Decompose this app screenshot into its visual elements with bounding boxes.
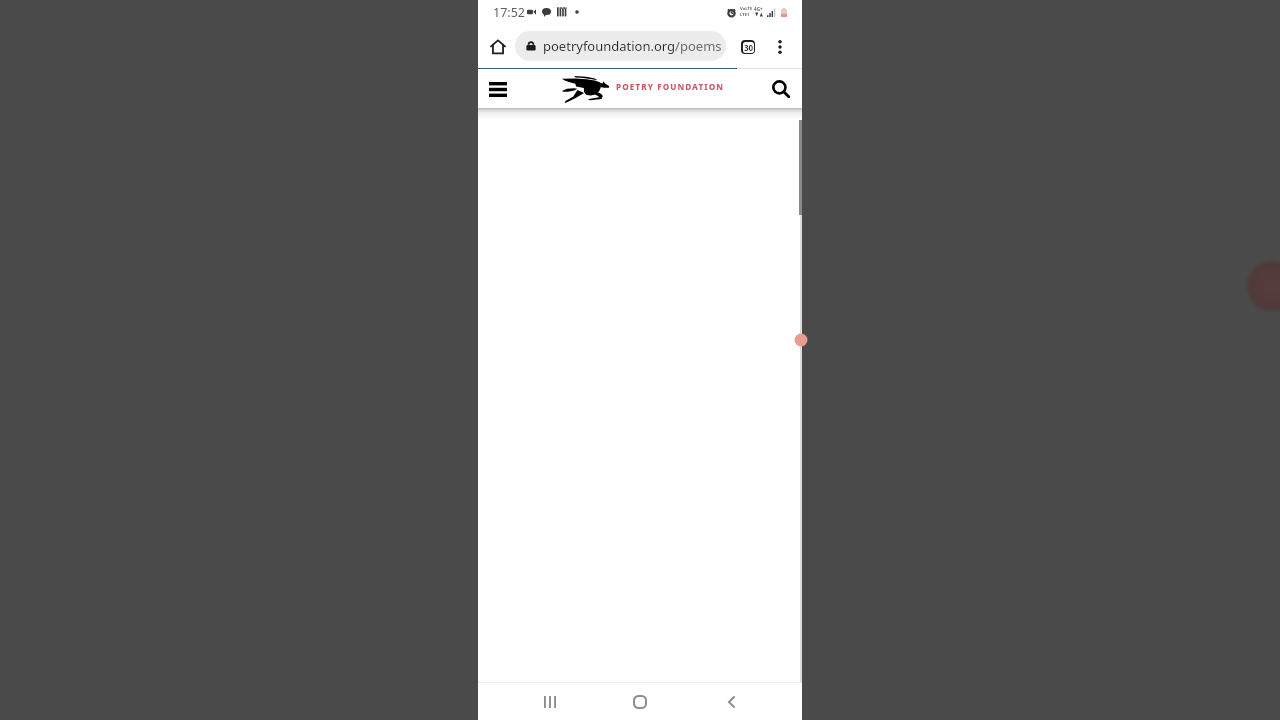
staticText: 17:52	[493, 4, 525, 21]
staticText: 4G+	[754, 6, 763, 12]
staticText: LTE1	[740, 12, 750, 18]
button[interactable]: Tabs	[737, 36, 759, 58]
button[interactable]: Search	[769, 77, 792, 100]
button[interactable]: Home	[623, 685, 657, 719]
button[interactable]: Home	[486, 35, 509, 58]
staticText: POETRY FOUNDATION	[616, 81, 724, 92]
staticText: VoLTE	[740, 6, 753, 12]
button[interactable]: Recent apps	[533, 685, 567, 719]
button[interactable]: More options	[769, 36, 791, 58]
staticText: poetryfoundation.org/poems	[543, 37, 722, 55]
button[interactable]: poetryfoundation.org/poems	[515, 31, 726, 61]
button[interactable]: Menu	[485, 78, 511, 101]
button[interactable]: Back	[714, 685, 748, 719]
staticText: 30	[744, 42, 754, 53]
